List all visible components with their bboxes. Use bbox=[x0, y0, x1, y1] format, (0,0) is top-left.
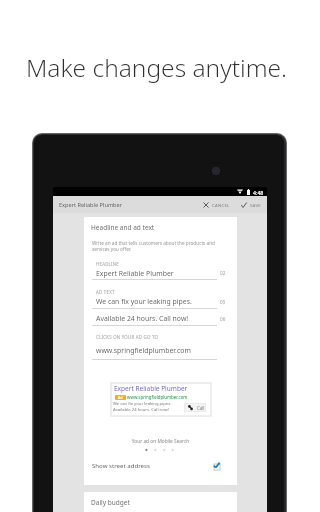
staticText: HEADLINE bbox=[96, 261, 120, 267]
staticText: Expert Reliable Plumber bbox=[59, 201, 123, 209]
staticText: Make changes anytime. bbox=[26, 51, 288, 84]
staticText: Your ad on Mobile Search bbox=[84, 438, 237, 445]
staticText: 06 bbox=[220, 316, 226, 322]
staticText: We can fix your leaking pipes. bbox=[96, 297, 192, 306]
staticText: AD TEXT bbox=[96, 289, 115, 295]
staticText: www.springfieldplumber.com bbox=[127, 394, 188, 400]
button[interactable]: CANCEL bbox=[199, 199, 233, 211]
staticText: We can fix your leaking pipes. bbox=[113, 401, 172, 407]
button[interactable] bbox=[92, 344, 217, 359]
button[interactable] bbox=[92, 312, 217, 326]
staticText: 05 bbox=[220, 299, 226, 305]
staticText: 4:48 bbox=[253, 189, 264, 196]
staticText: Expert Reliable Plumber bbox=[114, 384, 188, 393]
button[interactable] bbox=[92, 295, 217, 309]
button[interactable]: SAVE bbox=[237, 199, 264, 211]
staticText: Expert Reliable Plumber bbox=[96, 269, 174, 278]
staticText: SAVE bbox=[250, 202, 261, 208]
staticText: Ad bbox=[118, 395, 123, 400]
staticText: Headline and ad text bbox=[91, 223, 155, 232]
staticText: Available 24 hours. Call now! bbox=[96, 314, 189, 323]
staticText: Write an ad that tells customers about t… bbox=[92, 240, 218, 253]
button[interactable]: Show street address bbox=[84, 457, 237, 473]
staticText: CLICKS ON YOUR AD GO TO bbox=[96, 334, 159, 340]
staticText: Available 24 hours. Call now! bbox=[113, 407, 170, 413]
staticText: CANCEL bbox=[212, 202, 230, 208]
button[interactable] bbox=[92, 267, 217, 281]
staticText: Call bbox=[197, 405, 205, 411]
staticText: 02 bbox=[220, 270, 226, 276]
staticText: Daily budget bbox=[91, 498, 130, 507]
staticText: Show street address bbox=[92, 461, 150, 469]
button[interactable]: Call bbox=[184, 403, 206, 412]
staticText: www.springfieldplumber.com bbox=[96, 346, 191, 355]
